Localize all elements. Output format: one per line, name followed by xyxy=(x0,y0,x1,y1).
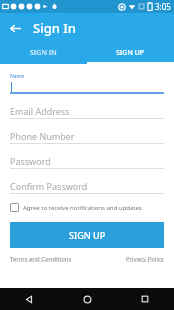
button[interactable]: SIGN IN xyxy=(0,42,87,64)
staticText: Agree to receive notifications and updat… xyxy=(23,204,144,212)
button[interactable]: Name xyxy=(10,73,164,94)
button[interactable]: Phone Number xyxy=(10,129,164,144)
staticText: Confirm Password xyxy=(10,180,88,192)
staticText: Email Address xyxy=(10,105,70,117)
staticText: SIGN UP xyxy=(69,229,106,241)
button[interactable]: Email Address xyxy=(10,104,164,119)
button[interactable]: SIGN UP xyxy=(10,222,164,248)
staticText: SIGN UP xyxy=(116,48,145,58)
button[interactable]: Terms and Conditions xyxy=(10,255,72,263)
staticText: Sign In xyxy=(33,19,77,37)
staticText: Password xyxy=(10,155,51,167)
button[interactable]: Password xyxy=(10,154,164,169)
staticText: SIGN IN xyxy=(30,48,57,58)
staticText: Phone Number xyxy=(10,130,75,142)
button[interactable]: Confirm Password xyxy=(10,179,164,194)
button[interactable]: Recent apps xyxy=(116,288,174,310)
button[interactable]: Privacy Policy xyxy=(126,255,164,263)
button[interactable]: SIGN UP xyxy=(87,42,174,64)
staticText: Name xyxy=(10,73,25,80)
staticText: 3:05 xyxy=(155,1,171,12)
button[interactable]: Back xyxy=(0,288,58,310)
button[interactable]: Home xyxy=(58,288,116,310)
button[interactable]: Agree to receive notifications and updat… xyxy=(10,203,164,212)
button[interactable]: Back xyxy=(4,17,26,39)
